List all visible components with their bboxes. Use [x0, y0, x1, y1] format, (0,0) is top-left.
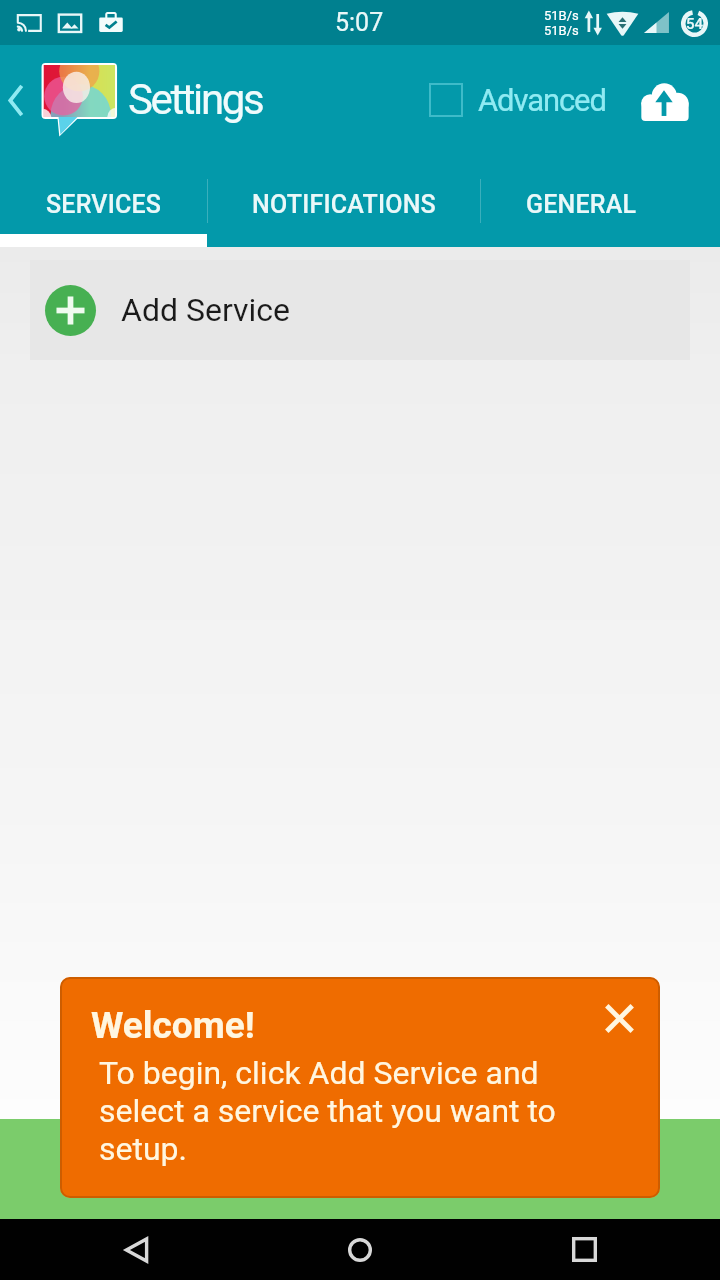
staticText: Welcome! [91, 1004, 255, 1047]
button[interactable]: SERVICES [0, 155, 207, 247]
button[interactable]: Back [76, 1219, 196, 1280]
button[interactable]: Advanced [415, 65, 620, 135]
staticText: Advanced [478, 82, 606, 118]
button[interactable]: Recents [524, 1219, 644, 1280]
staticText: Add Service [121, 291, 290, 329]
staticText: 51B/s [544, 23, 579, 38]
button[interactable]: GENERAL [480, 155, 683, 247]
button[interactable]: Welcome! [60, 977, 660, 1198]
button[interactable]: Home [300, 1219, 420, 1280]
staticText: 51B/s [544, 8, 579, 23]
button[interactable]: Add Service [30, 260, 690, 360]
staticText: Settings [128, 75, 263, 124]
button[interactable]: NOTIFICATIONS [207, 155, 480, 247]
staticText: NOTIFICATIONS [252, 190, 436, 219]
staticText: To begin, click Add Service and select a… [99, 1054, 569, 1168]
staticText: 5:07 [335, 8, 384, 37]
staticText: 54 [686, 15, 704, 33]
staticText: SERVICES [46, 190, 162, 219]
button[interactable]: Back [0, 45, 34, 155]
button[interactable]: Close [595, 994, 643, 1042]
staticText: GENERAL [526, 190, 637, 219]
button[interactable]: Upload to cloud [622, 65, 706, 135]
